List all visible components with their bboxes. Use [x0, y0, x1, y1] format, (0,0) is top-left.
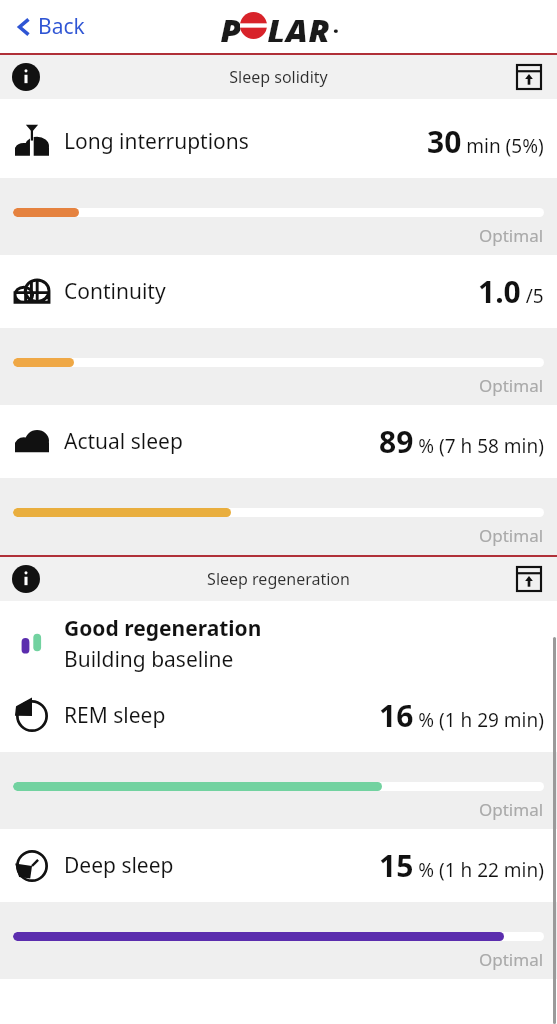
button[interactable]: Continuity — [0, 255, 557, 328]
button[interactable]: REM sleep — [0, 679, 557, 752]
staticText: 16 % (1 h 29 min) — [379, 695, 544, 736]
staticText: Long interruptions — [64, 127, 249, 156]
staticText: Back — [38, 12, 85, 41]
staticText: Sleep solidity — [229, 66, 328, 88]
staticText: Optimal — [479, 374, 544, 397]
button[interactable]: Information — [8, 561, 44, 597]
staticText: Actual sleep — [64, 427, 183, 456]
staticText: Optimal — [479, 798, 544, 821]
staticText: Sleep regeneration — [207, 568, 350, 590]
button[interactable]: Collapse section — [511, 59, 547, 95]
staticText: 1.0 /5 — [478, 271, 544, 312]
button[interactable]: Back — [10, 8, 91, 45]
staticText: Optimal — [479, 948, 544, 971]
button[interactable]: Collapse section — [511, 561, 547, 597]
staticText: Building baseline — [64, 645, 234, 674]
staticText: Deep sleep — [64, 851, 174, 880]
staticText: LAR — [267, 8, 331, 42]
button[interactable]: Deep sleep — [0, 829, 557, 902]
staticText: . — [333, 12, 339, 39]
staticText: 89 % (7 h 58 min) — [379, 421, 544, 462]
staticText: REM sleep — [64, 701, 166, 730]
staticText: Good regeneration — [64, 614, 262, 643]
staticText: 15 % (1 h 22 min) — [379, 845, 544, 886]
staticText: Continuity — [64, 277, 166, 306]
button[interactable]: Information — [8, 59, 44, 95]
button[interactable]: Actual sleep — [0, 405, 557, 478]
button[interactable]: Good regeneration — [0, 609, 557, 679]
button[interactable]: Long interruptions — [0, 105, 557, 178]
staticText: Optimal — [479, 224, 544, 247]
staticText: P — [220, 8, 242, 42]
staticText: 30 min (5%) — [427, 121, 544, 162]
staticText: Optimal — [479, 524, 544, 547]
